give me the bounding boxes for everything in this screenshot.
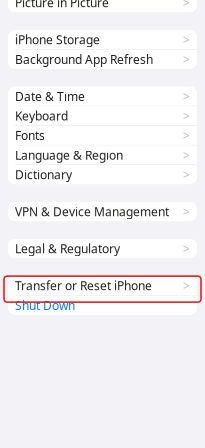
staticText: > <box>183 167 190 183</box>
staticText: iPhone Storage <box>15 32 100 48</box>
button[interactable]: Shut Down <box>8 296 197 315</box>
staticText: Legal & Regulatory <box>15 241 120 257</box>
staticText: Fonts <box>15 127 45 143</box>
staticText: > <box>183 204 190 220</box>
staticText: > <box>183 0 190 11</box>
staticText: Background App Refresh <box>15 51 153 67</box>
staticText: Language & Region <box>15 147 123 163</box>
staticText: > <box>183 88 190 104</box>
staticText: > <box>183 147 190 163</box>
button[interactable]: iPhone Storage <box>8 30 197 49</box>
staticText: Dictionary <box>15 167 72 183</box>
staticText: Date & Time <box>15 88 85 104</box>
button[interactable]: Fonts <box>8 126 197 145</box>
staticText: Shut Down <box>15 297 75 313</box>
button[interactable]: Date & Time <box>8 87 197 106</box>
button[interactable]: Dictionary <box>8 165 197 184</box>
button[interactable]: VPN & Device Management <box>8 202 197 221</box>
button[interactable]: Language & Region <box>8 145 197 164</box>
button[interactable]: Picture in Picture <box>8 0 197 12</box>
staticText: > <box>183 51 190 67</box>
staticText: VPN & Device Management <box>15 204 169 220</box>
staticText: > <box>183 32 190 48</box>
button[interactable]: Keyboard <box>8 106 197 125</box>
staticText: > <box>183 108 190 124</box>
button[interactable]: Transfer or Reset iPhone <box>8 276 197 295</box>
button[interactable]: Legal & Regulatory <box>8 239 197 258</box>
staticText: > <box>183 241 190 257</box>
staticText: Keyboard <box>15 108 68 124</box>
staticText: > <box>183 127 190 143</box>
staticText: Transfer or Reset iPhone <box>15 278 152 294</box>
staticText: > <box>183 278 190 294</box>
button[interactable]: Background App Refresh <box>8 50 197 69</box>
staticText: Picture in Picture <box>15 0 109 11</box>
